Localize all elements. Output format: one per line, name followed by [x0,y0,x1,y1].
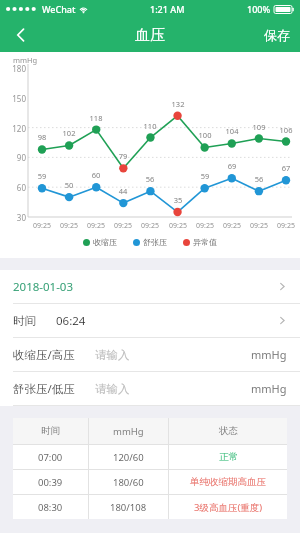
staticText: 请输入 [95,348,130,362]
button[interactable]: 08:30 [13,495,287,519]
staticText: 00:39 [38,476,63,489]
staticText: 120 [4,123,26,134]
button[interactable]: 00:39 [13,470,287,494]
staticText: 09:25 [246,221,272,231]
staticText: 100% [247,3,271,15]
staticText: 67 [274,163,298,173]
staticText: mmHg [13,55,38,65]
staticText: 104 [220,126,244,136]
staticText: 35 [166,195,190,205]
staticText: 正常 [219,451,238,463]
staticText: 09:25 [192,221,218,231]
staticText: 收缩压/高压 [13,347,75,363]
staticText: 44 [111,186,135,196]
staticText: 舒张压/低压 [13,381,75,397]
staticText: 09:25 [165,221,191,231]
staticText: 79 [111,151,135,161]
staticText: 状态 [219,425,238,437]
button[interactable]: 时间 [0,304,300,338]
staticText: 56 [247,174,271,184]
staticText: 异常值 [193,237,217,247]
staticText: 60 [4,182,26,193]
button[interactable]: 07:00 [13,445,287,469]
staticText: WeChat [42,3,76,15]
button[interactable]: 保存 [254,18,300,52]
staticText: 150 [4,93,26,104]
staticText: 56 [138,174,162,184]
staticText: 180/60 [113,476,144,489]
staticText: 118 [84,113,108,123]
staticText: 110 [138,121,162,131]
staticText: 120/60 [113,451,144,464]
staticText: 时间 [13,314,36,328]
staticText: 50 [57,180,81,190]
staticText: 109 [247,122,271,132]
button[interactable]: 舒张压/低压 [0,372,300,406]
staticText: 180/108 [110,501,147,514]
staticText: 07:00 [38,451,63,464]
staticText: 舒张压 [143,237,167,247]
staticText: 血压 [135,26,165,45]
staticText: 59 [193,171,217,181]
staticText: 09:25 [137,221,163,231]
staticText: 08:30 [38,501,63,514]
staticText: 06:24 [56,313,86,329]
staticText: 3级高血压(重度) [194,501,263,514]
staticText: 2018-01-03 [13,279,74,295]
staticText: 09:25 [110,221,136,231]
staticText: 09:25 [56,221,82,231]
staticText: 132 [166,99,190,109]
staticText: 09:25 [273,221,299,231]
staticText: 09:25 [29,221,55,231]
staticText: 180 [4,63,26,74]
staticText: 100 [193,130,217,140]
staticText: 请输入 [95,382,130,396]
staticText: 90 [4,152,26,163]
staticText: 102 [57,128,81,138]
staticText: mmHg [113,425,144,438]
staticText: 60 [84,170,108,180]
staticText: mmHg [251,347,287,362]
button[interactable]: 收缩压/高压 [0,338,300,372]
staticText: 单纯收缩期高血压 [190,476,266,488]
staticText: 59 [30,171,54,181]
staticText: 时间 [41,425,60,437]
staticText: mmHg [251,381,287,396]
staticText: 69 [220,161,244,171]
staticText: 09:25 [83,221,109,231]
button[interactable]: 2018-01-03 [0,270,300,304]
staticText: 106 [274,125,298,135]
staticText: 98 [30,132,54,142]
staticText: 收缩压 [93,237,117,247]
button[interactable]: Back [0,18,42,52]
staticText: 保存 [264,27,290,43]
staticText: 30 [4,212,26,223]
staticText: 1:21 AM [150,3,185,15]
staticText: 09:25 [219,221,245,231]
